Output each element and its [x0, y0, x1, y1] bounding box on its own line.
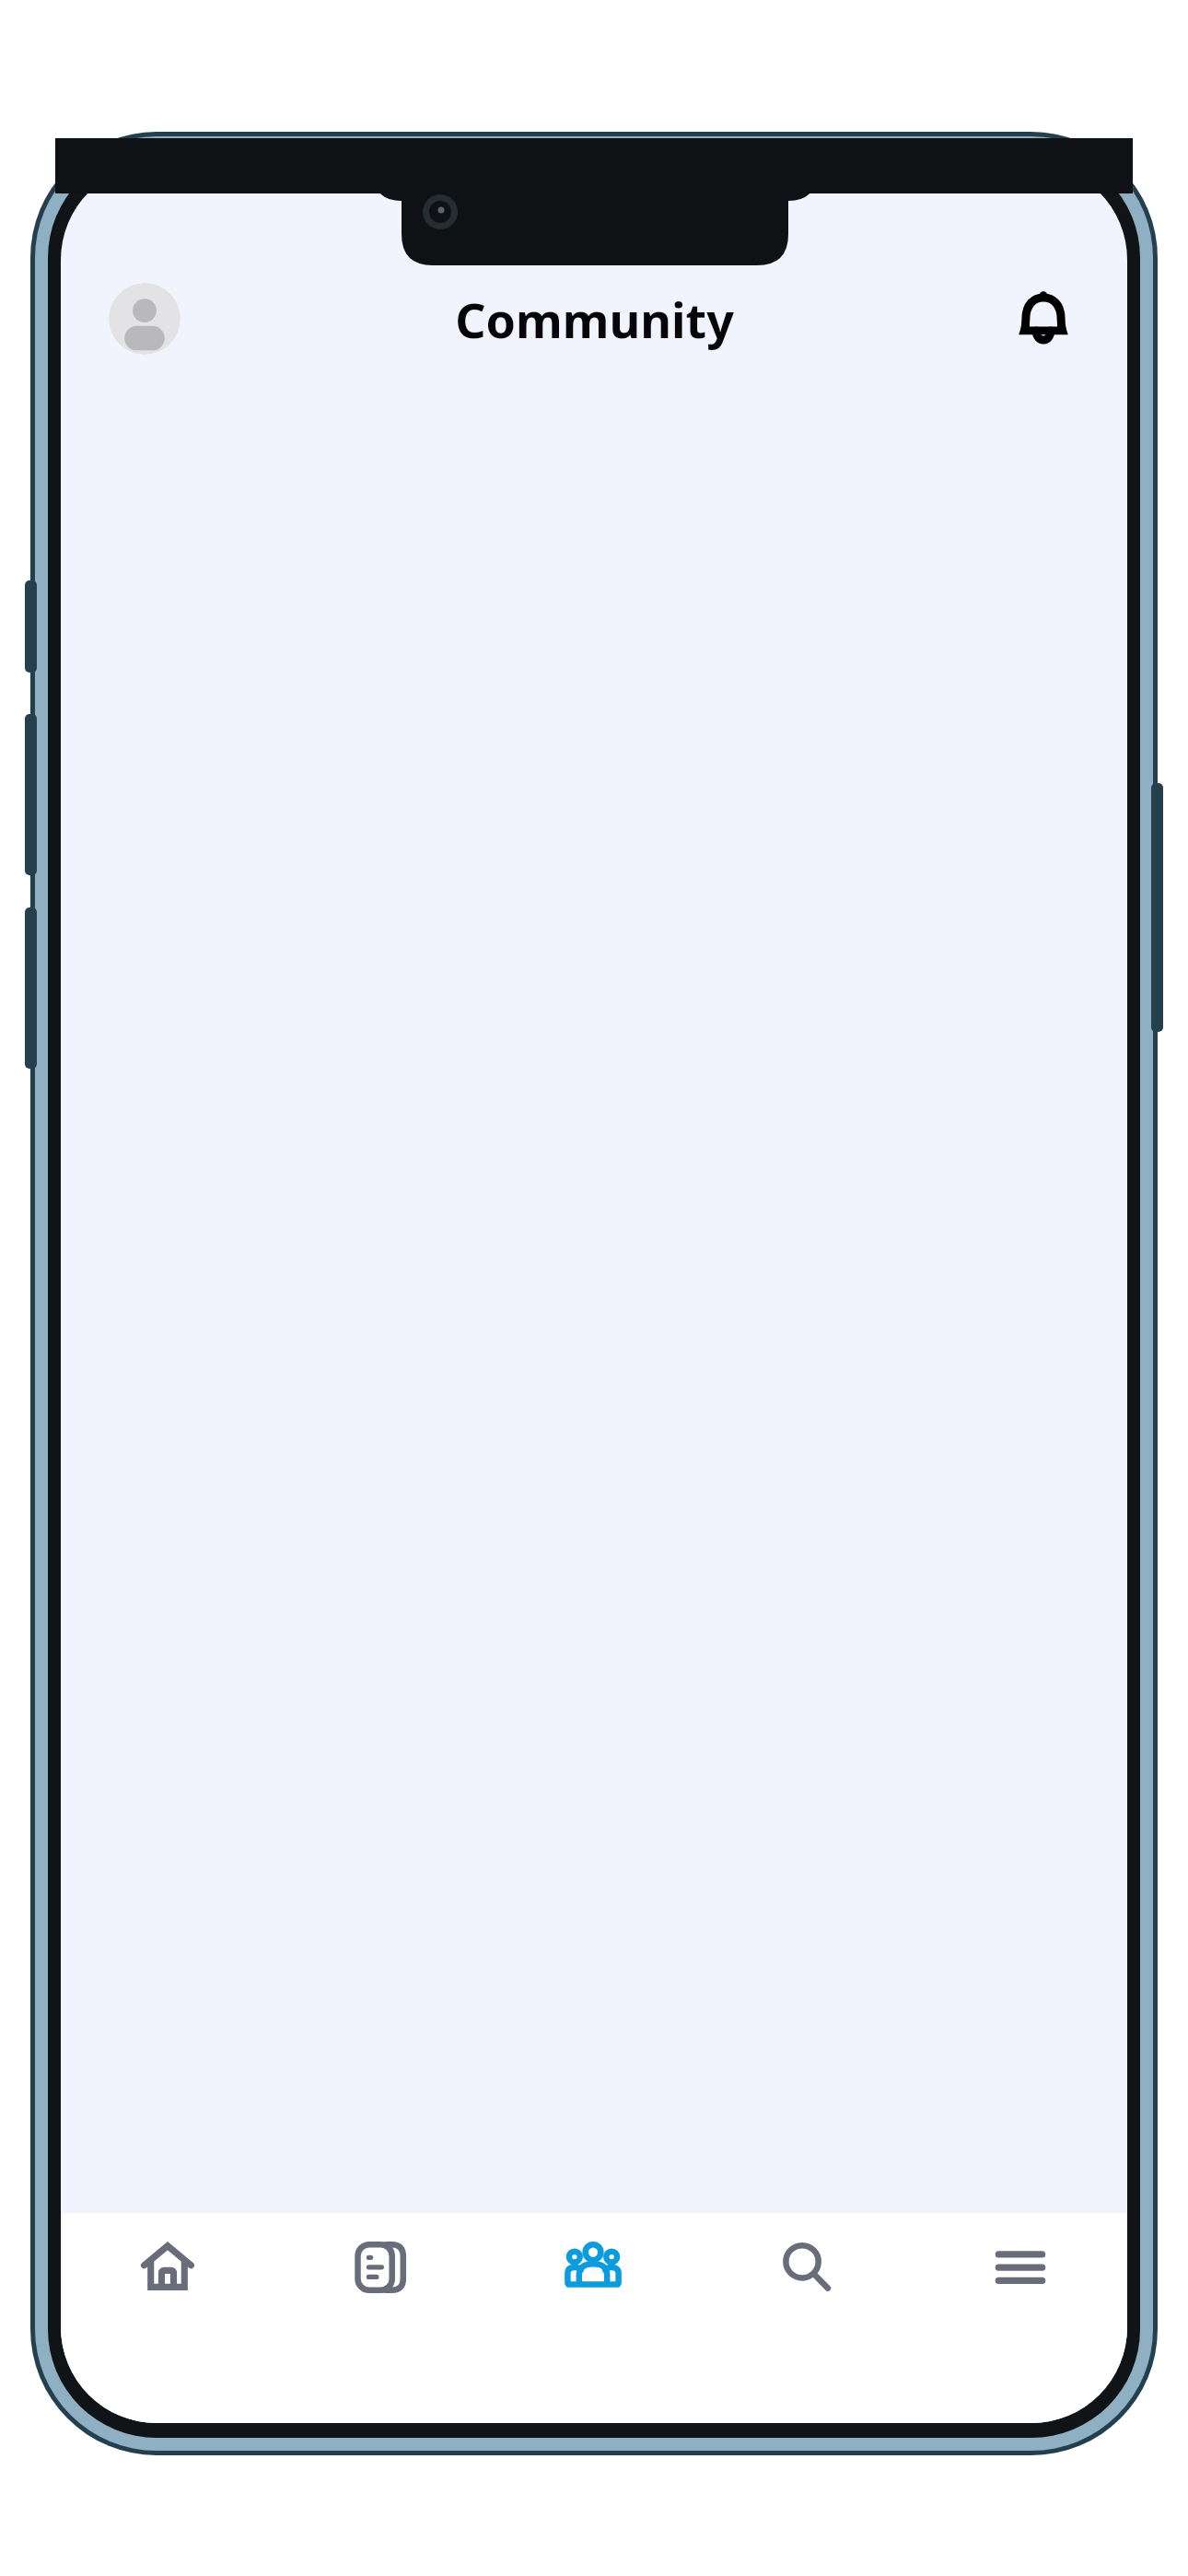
button[interactable]: Home [61, 2213, 274, 2296]
button[interactable]: Community [486, 2213, 700, 2296]
button[interactable]: Search [700, 2213, 914, 2296]
button[interactable]: Feed [274, 2213, 486, 2296]
button[interactable]: Profile [109, 283, 181, 355]
button[interactable]: Notifications [1007, 283, 1079, 355]
staticText: Community [455, 287, 734, 352]
button[interactable]: Menu [914, 2213, 1127, 2296]
